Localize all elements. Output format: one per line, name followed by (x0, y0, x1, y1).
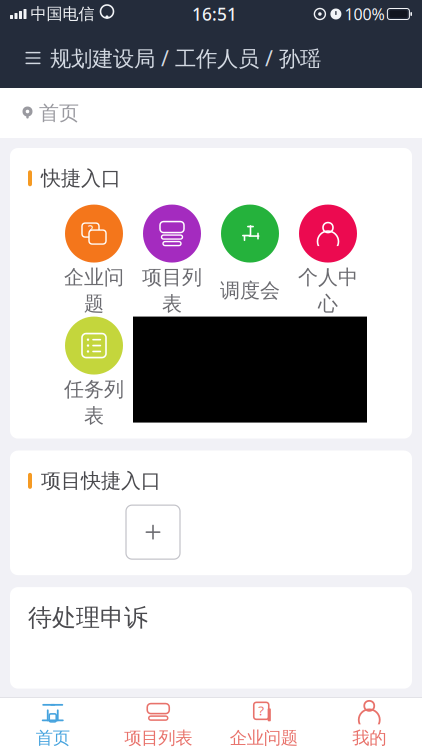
staticText: 项目列表 (124, 727, 192, 749)
button[interactable]: 任务列 (55, 317, 133, 423)
staticText: 题 (84, 292, 104, 316)
button[interactable]: 项目列 (133, 205, 211, 311)
button[interactable]: 我的 (316, 698, 422, 750)
staticText: 我的 (352, 727, 386, 749)
staticText: ? (258, 701, 264, 719)
staticText: 表 (84, 404, 104, 428)
staticText: 项目快捷入口 (41, 469, 161, 493)
button[interactable]: 调度会 (211, 205, 289, 311)
button[interactable]: 首页 (0, 698, 105, 750)
staticText: ? (88, 222, 93, 237)
button[interactable]: ? (55, 205, 133, 311)
button[interactable]: Menu (16, 36, 50, 80)
button[interactable]: 项目列表 (105, 698, 211, 750)
staticText: 调度会 (220, 278, 280, 303)
staticText: 100% (344, 3, 384, 25)
staticText: 首页 (36, 727, 70, 749)
button[interactable]: Add project shortcut (126, 505, 180, 559)
staticText: 快捷入口 (41, 166, 121, 191)
staticText: 规划建设局 / 工作人员 / 孙瑶 (50, 44, 321, 72)
staticText: 项目列 (142, 265, 202, 290)
staticText: 心 (318, 292, 338, 316)
staticText: 首页 (39, 101, 79, 125)
staticText: 个人中 (298, 265, 358, 290)
staticText: 企业问题 (230, 727, 298, 749)
staticText: 中国电信 (30, 4, 94, 24)
staticText: 任务列 (64, 377, 124, 402)
staticText: 16:51 (192, 2, 237, 25)
staticText: 待处理申诉 (28, 603, 148, 633)
staticText: 企业问 (64, 265, 124, 290)
button[interactable]: 个人中 (289, 205, 367, 311)
button[interactable]: ? (211, 698, 316, 750)
staticText: 表 (162, 292, 182, 316)
